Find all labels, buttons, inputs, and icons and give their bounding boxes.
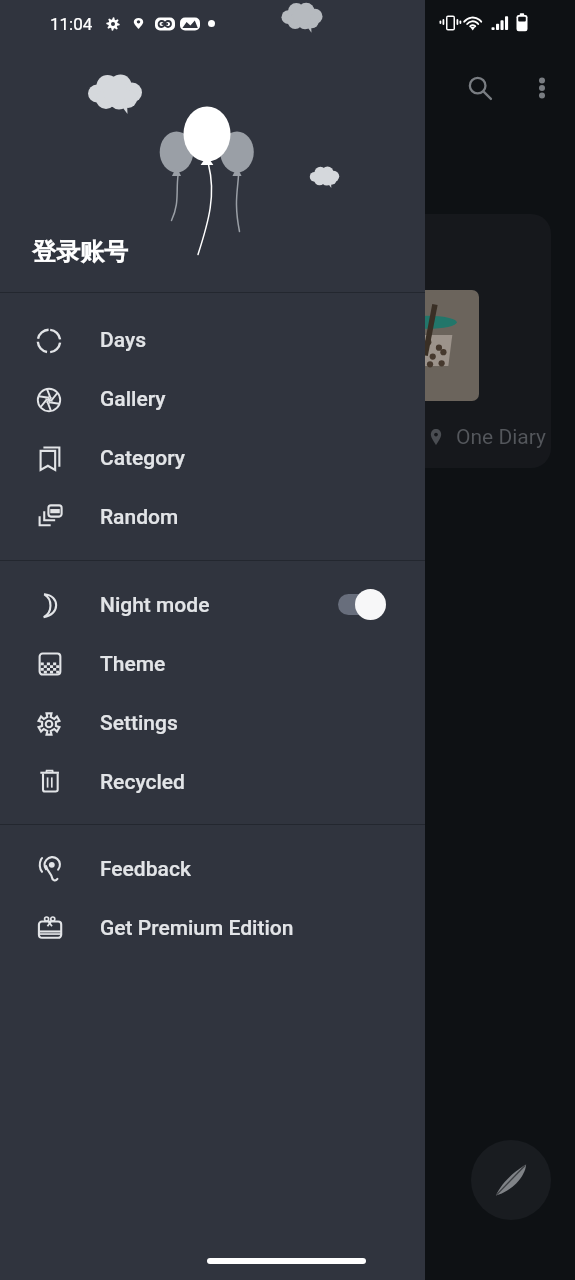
staticText: Category — [100, 446, 185, 471]
staticText: 11:04 — [50, 14, 93, 34]
staticText: Gallery — [100, 387, 166, 412]
button[interactable]: More options — [519, 65, 565, 111]
button[interactable]: Theme — [0, 635, 425, 694]
staticText: Get Premium Edition — [100, 916, 294, 941]
staticText: Settings — [100, 711, 178, 736]
button[interactable]: Search — [457, 65, 503, 111]
button[interactable]: Recycled — [0, 753, 425, 812]
staticText: Theme — [100, 652, 166, 677]
button[interactable]: Feedback — [0, 840, 425, 899]
staticText: Recycled — [100, 770, 185, 795]
staticText: Days — [100, 328, 147, 353]
button[interactable]: Random — [0, 488, 425, 547]
button[interactable]: One Diary — [168, 214, 551, 468]
button[interactable]: Settings — [0, 694, 425, 753]
staticText: Night mode — [100, 593, 210, 618]
button[interactable]: Get Premium Edition — [0, 899, 425, 958]
button[interactable]: New entry — [471, 1140, 551, 1220]
staticText: 登录账号 — [32, 237, 128, 267]
button[interactable]: Night mode — [0, 576, 425, 635]
staticText: One Diary — [456, 425, 546, 450]
staticText: Feedback — [100, 857, 191, 882]
button[interactable]: Category — [0, 429, 425, 488]
staticText: Random — [100, 505, 179, 530]
button[interactable]: Days — [0, 311, 425, 370]
button[interactable]: Gallery — [0, 370, 425, 429]
